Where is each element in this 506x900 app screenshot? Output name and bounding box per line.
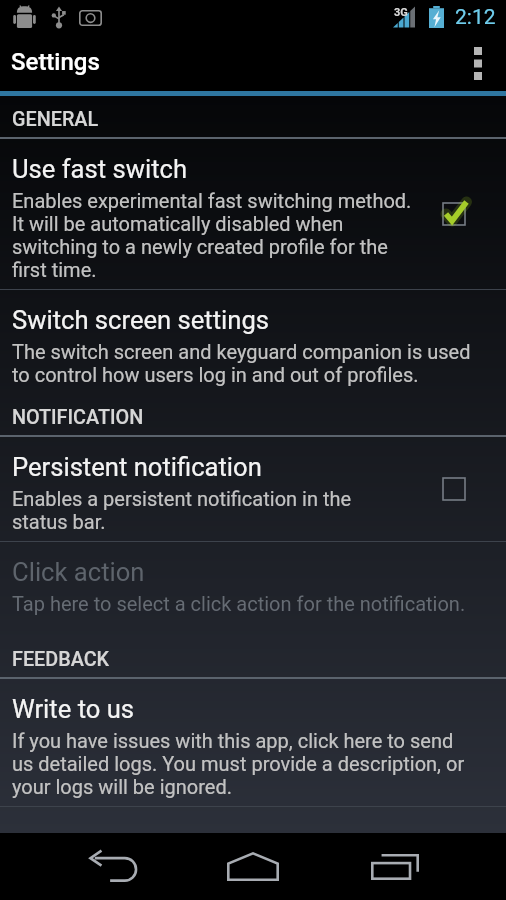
button[interactable]: More options	[450, 35, 506, 91]
staticText: FEEDBACK	[12, 648, 110, 671]
button[interactable]: Back	[58, 833, 168, 900]
button[interactable]: Switch screen settings	[0, 290, 506, 394]
button[interactable]: Click action	[0, 542, 506, 636]
staticText: Enables experimental fast switching meth…	[12, 190, 412, 282]
button[interactable]: Persistent notification	[0, 437, 506, 541]
button[interactable]: Home	[198, 833, 308, 900]
button[interactable]: Write to us	[0, 679, 506, 806]
button[interactable]: Use fast switch	[0, 139, 506, 289]
button[interactable]: Recent apps	[340, 833, 450, 900]
staticText: Use fast switch	[12, 155, 188, 184]
staticText: 2:12	[455, 5, 496, 30]
staticText: NOTIFICATION	[12, 406, 144, 429]
staticText: Enables a persistent notification in the…	[12, 488, 352, 534]
staticText: 3G	[394, 6, 408, 19]
staticText: Settings	[11, 48, 100, 76]
staticText: GENERAL	[12, 108, 99, 131]
staticText: Write to us	[12, 695, 135, 724]
staticText: Click action	[12, 558, 145, 587]
staticText: Switch screen settings	[12, 306, 269, 335]
staticText: Persistent notification	[12, 453, 262, 482]
staticText: Tap here to select a click action for th…	[12, 593, 466, 616]
staticText: If you have issues with this app, click …	[12, 730, 465, 799]
staticText: The switch screen and keyguard companion…	[12, 341, 471, 387]
